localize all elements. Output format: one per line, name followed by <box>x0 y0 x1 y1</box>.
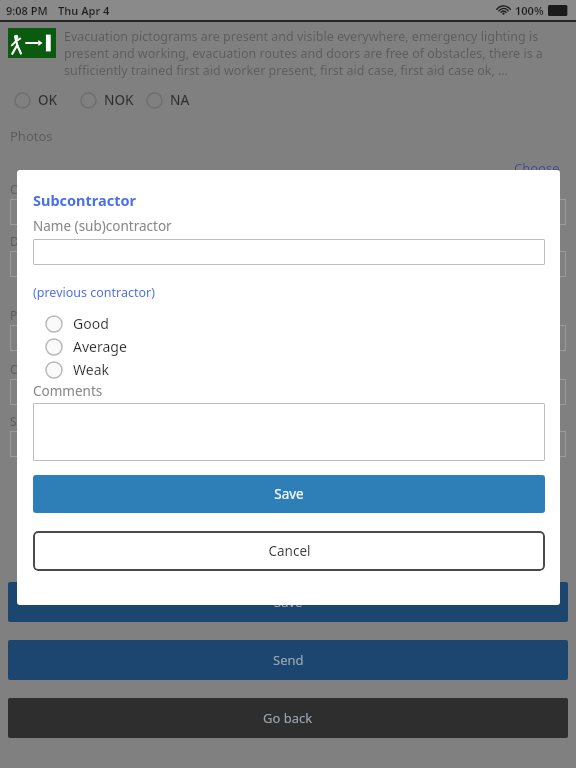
button[interactable]: Send <box>8 640 568 680</box>
button[interactable]: (previous contractor) <box>33 284 155 301</box>
button[interactable]: OK <box>14 91 58 109</box>
staticText: D <box>10 233 19 249</box>
staticText: 100% <box>515 3 544 18</box>
button[interactable]: Cancel <box>33 531 545 571</box>
staticText: Save <box>274 593 303 611</box>
staticText: Send <box>273 651 304 669</box>
staticText: Go back <box>263 709 313 727</box>
staticText: Average <box>73 337 127 356</box>
staticText: Save <box>274 485 304 503</box>
staticText: NOK <box>104 91 134 109</box>
staticText: Weak <box>73 360 109 379</box>
button[interactable]: NOK <box>80 91 134 109</box>
button[interactable]: NA <box>146 91 190 109</box>
staticText: C <box>10 181 18 197</box>
button[interactable]: Go back <box>8 698 568 738</box>
button[interactable] <box>33 403 545 461</box>
button[interactable]: Save <box>8 582 568 622</box>
staticText: Cancel <box>268 542 311 560</box>
button[interactable]: Average <box>33 337 545 356</box>
staticText: OK <box>38 91 58 109</box>
staticText: P <box>10 307 18 323</box>
staticText: Comments <box>33 382 103 400</box>
button[interactable] <box>33 239 545 265</box>
staticText: Name (sub)contractor <box>33 217 172 235</box>
button[interactable]: Choose <box>514 159 560 177</box>
staticText: S <box>10 413 17 429</box>
button[interactable]: Weak <box>33 360 545 379</box>
staticText: Photos <box>10 127 53 145</box>
button[interactable]: Save <box>33 475 545 513</box>
staticText: Thu Apr 4 <box>58 3 110 18</box>
staticText: NA <box>170 91 190 109</box>
staticText: 9:08 PM <box>6 3 48 18</box>
staticText: C <box>10 361 18 377</box>
staticText: Evacuation pictograms are present and vi… <box>64 28 568 79</box>
button[interactable]: Subcontractor <box>33 190 137 210</box>
staticText: Good <box>73 314 109 333</box>
button[interactable]: Good <box>33 314 545 333</box>
